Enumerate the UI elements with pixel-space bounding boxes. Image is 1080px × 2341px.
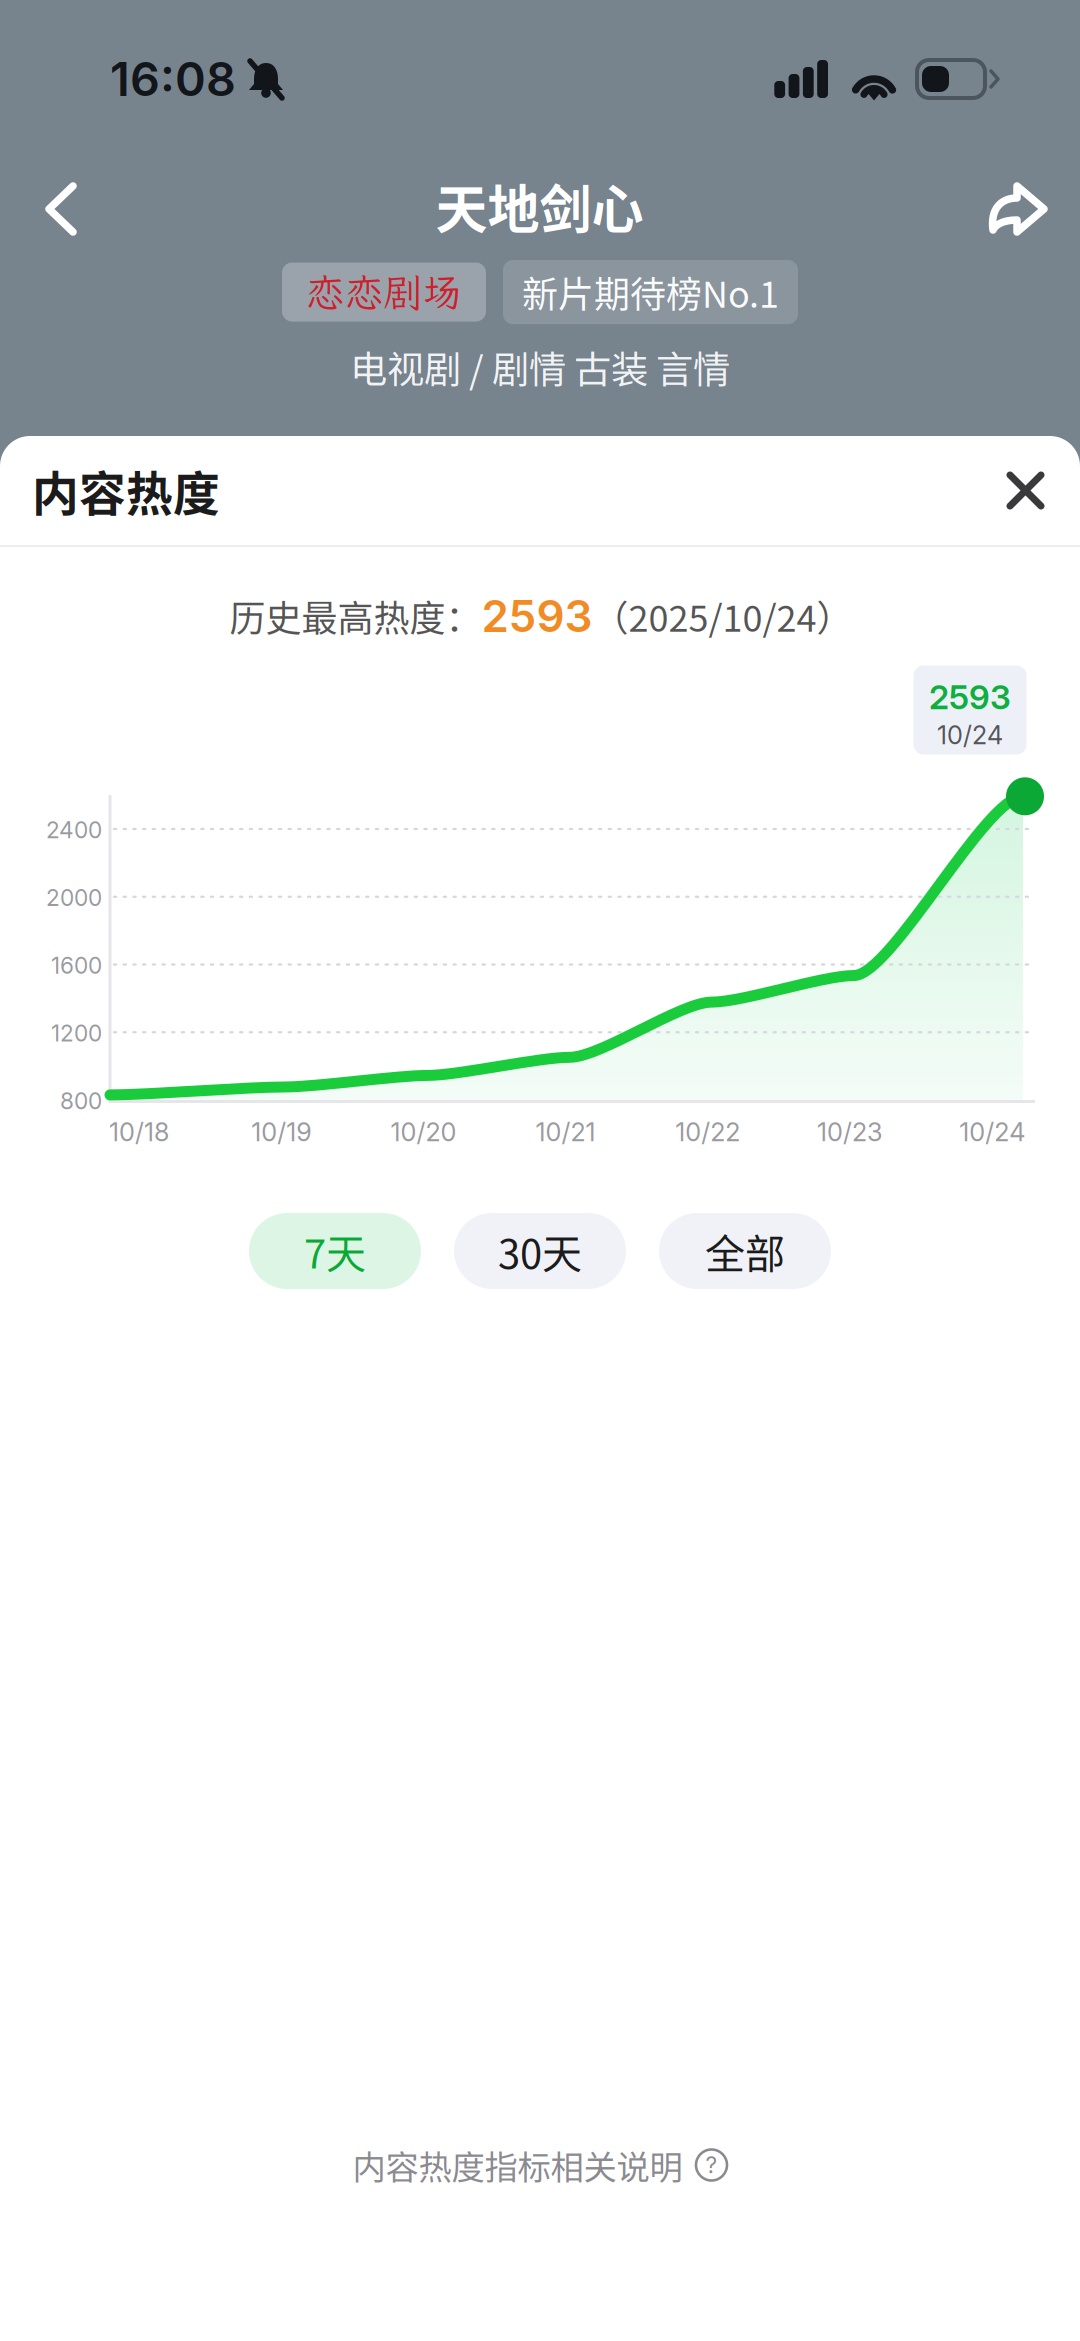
button[interactable]: 30天 xyxy=(454,1213,626,1289)
button[interactable]: Back xyxy=(10,160,96,252)
staticText: 2593 xyxy=(929,677,1011,717)
staticText: 全部 xyxy=(705,1222,785,1280)
staticText: 10/24 xyxy=(959,1117,1025,1147)
staticText: 10/20 xyxy=(390,1117,456,1147)
staticText: （2025/10/24） xyxy=(592,590,852,642)
staticText: 30天 xyxy=(498,1222,582,1280)
staticText: 天地剑心 xyxy=(435,168,643,244)
staticText: 历史最高热度： xyxy=(229,590,481,642)
staticText: 10/19 xyxy=(251,1117,311,1147)
button[interactable]: Share xyxy=(971,160,1070,252)
staticText: 内容热度 xyxy=(32,457,220,524)
staticText: ? xyxy=(705,2151,717,2179)
staticText: 新片期待榜No.1 xyxy=(522,266,779,318)
staticText: 10/22 xyxy=(675,1117,740,1147)
staticText: 恋恋剧场 xyxy=(306,267,462,317)
button[interactable]: 内容热度指标相关说明 xyxy=(344,2129,735,2201)
button[interactable]: 7天 xyxy=(249,1213,421,1289)
staticText: 10/24 xyxy=(937,720,1003,750)
staticText: 2400 xyxy=(46,816,102,844)
staticText: 10/21 xyxy=(536,1117,596,1147)
staticText: 1200 xyxy=(51,1019,102,1047)
staticText: 10/18 xyxy=(109,1117,169,1147)
staticText: 内容热度指标相关说明 xyxy=(352,2141,682,2189)
staticText: 16:08 xyxy=(110,51,236,107)
staticText: 2000 xyxy=(46,884,102,911)
staticText: 7天 xyxy=(304,1222,366,1280)
staticText: 10/23 xyxy=(817,1117,883,1147)
staticText: 电视剧 / 剧情 古装 言情 xyxy=(350,340,730,394)
staticText: 2593 xyxy=(481,589,592,643)
staticText: 1600 xyxy=(51,952,102,979)
button[interactable]: Close xyxy=(988,453,1063,528)
button[interactable]: 全部 xyxy=(659,1213,831,1289)
staticText: 800 xyxy=(60,1087,102,1115)
